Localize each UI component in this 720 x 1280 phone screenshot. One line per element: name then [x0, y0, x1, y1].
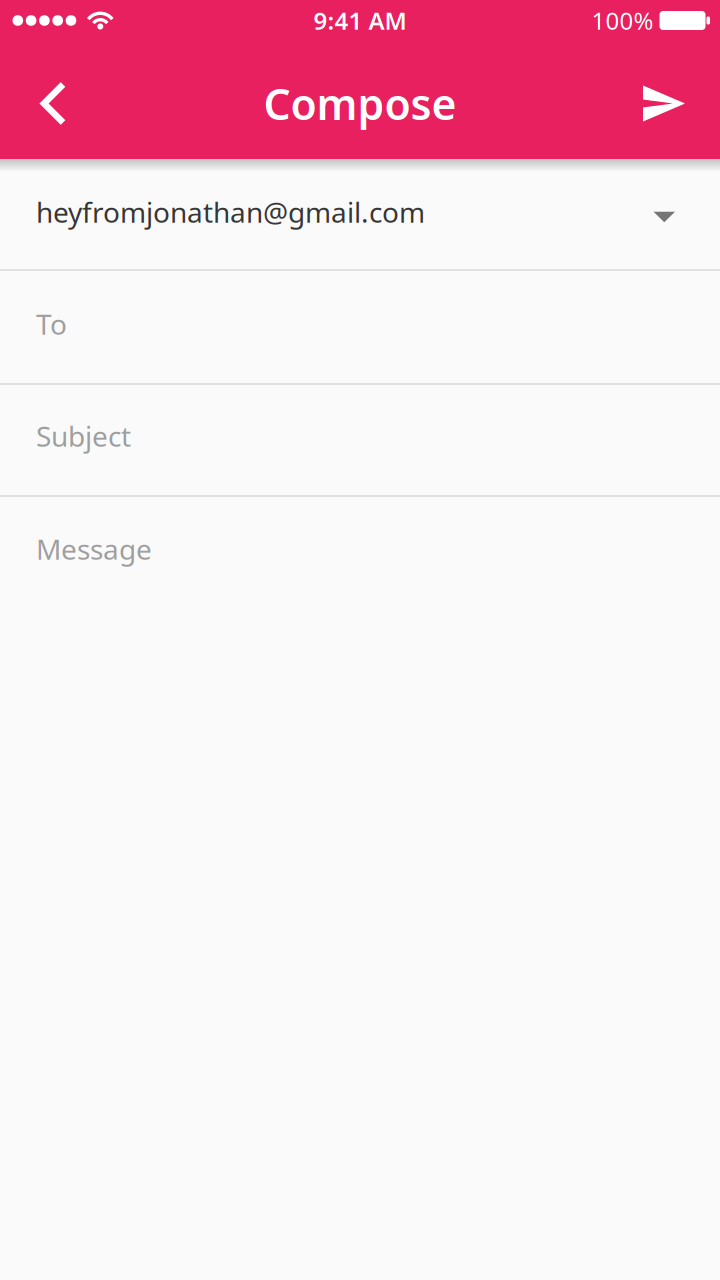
staticText: 100%	[591, 5, 653, 36]
staticText: Subject	[36, 417, 131, 455]
staticText: Message	[36, 530, 152, 568]
staticText: To	[36, 305, 67, 343]
button[interactable]: Send	[643, 65, 720, 141]
button[interactable]: To	[0, 271, 720, 383]
button[interactable]: heyfromjonathan@gmail.com	[0, 159, 720, 269]
staticText: Compose	[263, 75, 456, 132]
button[interactable]: Message	[0, 497, 720, 601]
staticText: heyfromjonathan@gmail.com	[36, 193, 425, 231]
button[interactable]: Subject	[0, 385, 720, 495]
staticText: 9:41 AM	[313, 5, 406, 36]
button[interactable]: Back	[0, 64, 63, 142]
